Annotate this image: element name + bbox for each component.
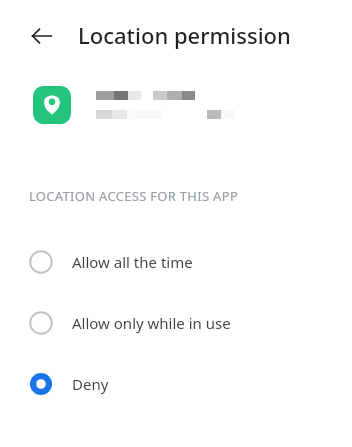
staticText: Location permission	[78, 20, 291, 50]
button[interactable]: Deny	[0, 353, 352, 414]
button[interactable]	[0, 70, 352, 140]
button[interactable]: Back	[22, 16, 62, 56]
button[interactable]: Allow all the time	[0, 231, 352, 292]
button[interactable]: Allow only while in use	[0, 292, 352, 353]
staticText: LOCATION ACCESS FOR THIS APP	[29, 187, 239, 205]
staticText: Deny	[72, 374, 109, 394]
staticText: Allow all the time	[72, 252, 193, 272]
staticText: Allow only while in use	[72, 313, 231, 333]
